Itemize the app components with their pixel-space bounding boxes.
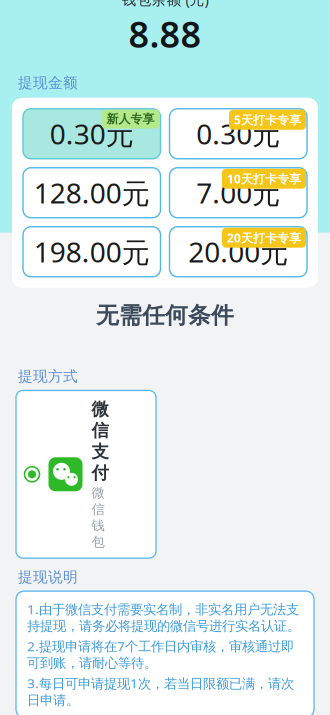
staticText: 微信钱包: [91, 485, 104, 550]
staticText: 20天打卡专享: [227, 230, 301, 246]
button[interactable]: 198.00元: [23, 227, 160, 277]
staticText: 0.30元: [50, 115, 134, 152]
button[interactable]: 7.00元: [169, 168, 307, 218]
button[interactable]: 128.00元: [23, 168, 160, 218]
staticText: 钱包余额 (元): [121, 0, 208, 9]
staticText: 20.00元: [188, 233, 288, 270]
staticText: 7.00元: [196, 174, 280, 211]
staticText: 10天打卡专享: [227, 171, 301, 187]
staticText: 微信支付: [91, 398, 108, 484]
button[interactable]: 微信支付: [16, 390, 156, 558]
staticText: 3.每日可申请提现1次，若当日限额已满，请次日申请。: [27, 674, 294, 708]
staticText: 5天打卡专享: [234, 112, 301, 128]
staticText: 198.00元: [34, 233, 150, 270]
staticText: 128.00元: [34, 174, 150, 211]
button[interactable]: 0.30元: [169, 109, 307, 159]
button[interactable]: 0.30元: [23, 109, 160, 159]
staticText: 2.提现申请将在7个工作日内审核，审核通过即可到账，请耐心等待。: [27, 637, 294, 671]
button[interactable]: 20.00元: [169, 227, 307, 277]
staticText: 0.30元: [196, 115, 280, 152]
staticText: 提现说明: [18, 568, 78, 586]
staticText: 提现金额: [18, 74, 78, 92]
staticText: 新人专享: [106, 112, 154, 126]
staticText: 提现方式: [18, 367, 78, 385]
staticText: 1.由于微信支付需要实名制，非实名用户无法支持提现，请务必将提现的微信号进行实名…: [27, 600, 300, 634]
staticText: 无需任何条件: [96, 302, 234, 329]
staticText: 8.88: [128, 10, 201, 58]
